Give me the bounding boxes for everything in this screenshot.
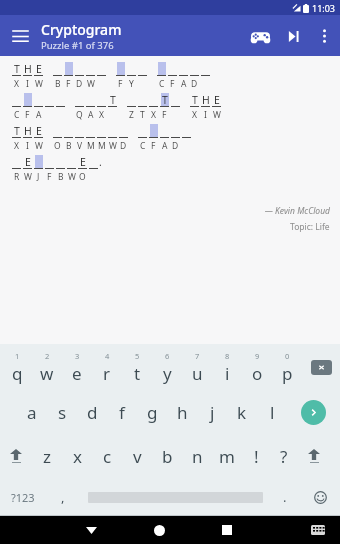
button[interactable]: Back [70,516,112,544]
button[interactable]: c [92,433,122,479]
button[interactable]: j [197,391,227,433]
button[interactable]: E [211,93,222,121]
button[interactable] [44,93,55,121]
button[interactable]: 6 [152,344,182,391]
button[interactable]: f [107,391,137,433]
button[interactable]: 0 [272,344,302,391]
button[interactable]: Play game [242,18,278,54]
button[interactable]: F [167,62,178,90]
button[interactable]: D [74,62,85,90]
button[interactable]: Next puzzle [278,21,308,51]
button[interactable]: A [85,93,96,121]
button[interactable]: ?123 [0,479,46,515]
button[interactable] [137,62,148,90]
button[interactable]: 9 [242,344,272,391]
button[interactable]: B [55,155,66,183]
button[interactable]: A [178,62,189,90]
button[interactable] [88,155,99,183]
button[interactable]: T [159,93,170,121]
button[interactable]: C [137,124,148,152]
button[interactable]: W [107,124,118,152]
button[interactable]: F [22,93,33,121]
button[interactable]: T [11,62,22,90]
button[interactable]: m [212,433,242,479]
button[interactable] [55,93,66,121]
button[interactable]: z [32,433,62,479]
button[interactable]: J [33,155,44,183]
button[interactable]: 3 [62,344,92,391]
button[interactable]: Recent apps [206,516,248,544]
button[interactable]: X [96,93,107,121]
button[interactable]: H [22,62,33,90]
button[interactable] [170,93,181,121]
button[interactable]: Enter [287,391,340,433]
button[interactable]: 7 [182,344,212,391]
button[interactable]: Shift [298,433,330,479]
button[interactable]: M [96,124,107,152]
button[interactable]: E [22,155,33,183]
button[interactable]: D [170,124,181,152]
button[interactable]: a [17,391,47,433]
button[interactable]: B [63,124,74,152]
button[interactable]: ! [242,433,270,479]
button[interactable]: D [189,62,200,90]
button[interactable]: k [227,391,257,433]
button[interactable]: Switch keyboard [300,516,336,544]
button[interactable]: E [77,155,88,183]
button[interactable]: 2 [32,344,62,391]
button[interactable]: X [148,93,159,121]
button[interactable]: More options [308,20,340,52]
button[interactable]: T [107,93,118,121]
button[interactable]: F [148,124,159,152]
button[interactable]: 1 [2,344,32,391]
button[interactable]: s [47,391,77,433]
button[interactable]: Y [126,62,137,90]
button[interactable]: v [122,433,152,479]
button[interactable]: n [182,433,212,479]
button[interactable]: Z [126,93,137,121]
button[interactable]: , [46,479,80,515]
button[interactable] [200,62,211,90]
button[interactable]: W [66,155,77,183]
button[interactable]: D [118,124,129,152]
button[interactable]: A [159,124,170,152]
button[interactable]: W [85,62,96,90]
button[interactable]: . [270,479,300,515]
button[interactable]: l [257,391,287,433]
button[interactable]: b [152,433,182,479]
button[interactable]: x [62,433,92,479]
button[interactable]: F [115,62,126,90]
button[interactable]: E [33,124,44,152]
button[interactable]: H [200,93,211,121]
button[interactable]: C [156,62,167,90]
button[interactable]: H [22,124,33,152]
button[interactable]: 5 [122,344,152,391]
button[interactable]: F [63,62,74,90]
button[interactable]: ? [270,433,298,479]
button[interactable]: O [52,124,63,152]
button[interactable]: M [85,124,96,152]
button[interactable]: R [11,155,22,183]
button[interactable]: B [52,62,63,90]
button[interactable]: Emoji [300,479,340,515]
button[interactable]: V [74,124,85,152]
button[interactable]: T [11,124,22,152]
button[interactable]: Home [138,516,180,544]
button[interactable]: C [11,93,22,121]
button[interactable] [181,124,192,152]
button[interactable]: Q [74,93,85,121]
button[interactable]: T [189,93,200,121]
button[interactable] [96,62,107,90]
button[interactable]: 4 [92,344,122,391]
button[interactable]: h [167,391,197,433]
button[interactable]: Space [80,479,270,515]
button[interactable]: Open navigation menu [0,16,40,56]
button[interactable]: A [33,93,44,121]
button[interactable]: Backspace [302,344,340,391]
button[interactable]: 8 [212,344,242,391]
button[interactable]: T [137,93,148,121]
button[interactable]: Shift [0,433,32,479]
button[interactable]: E [33,62,44,90]
button[interactable]: g [137,391,167,433]
button[interactable]: d [77,391,107,433]
